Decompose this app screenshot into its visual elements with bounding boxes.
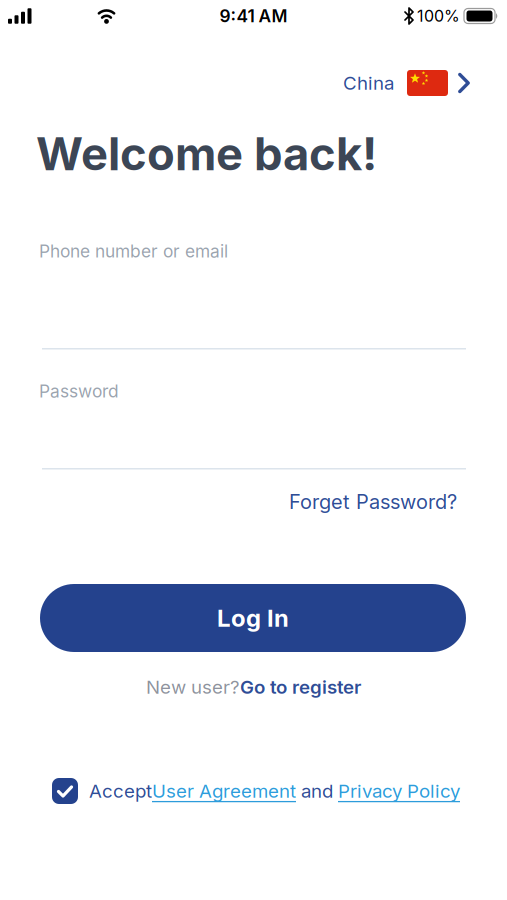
staticText: Welcome back! — [36, 127, 377, 180]
staticText: Phone number or email — [39, 241, 228, 261]
staticText: Accept — [89, 780, 152, 802]
button[interactable]: Log In — [40, 584, 466, 652]
button[interactable]: User Agreement — [152, 780, 296, 802]
staticText: Forget Password? — [289, 490, 457, 514]
staticText: China — [343, 72, 394, 94]
button[interactable]: Forget Password? — [289, 490, 457, 514]
button[interactable]: Accept terms — [52, 778, 78, 804]
staticText: Password — [39, 381, 119, 401]
staticText: Privacy Policy — [338, 780, 460, 802]
staticText: 100% — [417, 7, 460, 25]
staticText: Log In — [217, 604, 289, 632]
button[interactable]: Go to register — [240, 676, 361, 698]
staticText: and — [296, 780, 338, 802]
button[interactable]: Privacy Policy — [338, 780, 460, 802]
staticText: 9:41 AM — [219, 6, 287, 26]
staticText: User Agreement — [152, 780, 296, 802]
button[interactable]: China — [343, 70, 470, 96]
staticText: Go to register — [240, 676, 361, 698]
staticText: New user? — [146, 676, 240, 698]
